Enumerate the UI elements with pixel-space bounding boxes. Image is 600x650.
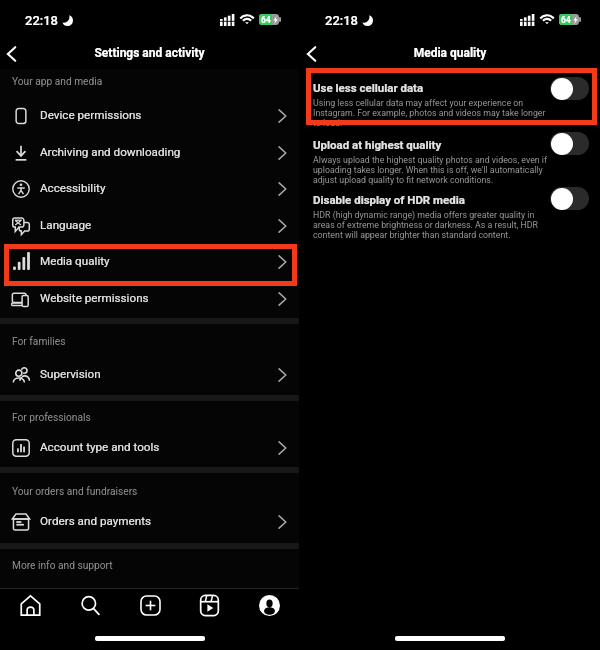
staticText: Upload at highest quality [313, 138, 442, 151]
staticText: adjust upload quality to fit network con… [313, 175, 494, 185]
staticText: Orders and payments [40, 514, 151, 528]
button[interactable]: Language [0, 208, 299, 244]
staticText: Media quality [40, 254, 110, 268]
staticText: Language [40, 218, 92, 232]
button[interactable]: Reels [193, 589, 225, 621]
staticText: Supervision [40, 367, 101, 381]
staticText: Accessibility [40, 181, 106, 195]
staticText: Use less cellular data [313, 81, 424, 94]
button[interactable]: Create [134, 589, 166, 621]
staticText: Device permissions [40, 108, 142, 122]
button[interactable]: Search [74, 589, 106, 621]
staticText: Your app and media [12, 76, 103, 88]
button[interactable]: Orders and payments [0, 504, 299, 540]
staticText: 64 [261, 15, 271, 25]
button[interactable]: Profile [253, 589, 285, 621]
button[interactable]: Use less cellular data [300, 81, 600, 139]
button[interactable]: Media quality [0, 244, 299, 280]
button[interactable]: Disable display of HDR media [550, 187, 589, 210]
button[interactable]: Account type and tools [0, 430, 299, 466]
staticText: areas of extreme brightness or darkness.… [313, 220, 538, 230]
staticText: Settings and activity [0, 46, 299, 60]
staticText: 22:18 [25, 13, 58, 28]
staticText: Always upload the highest quality photos… [313, 155, 548, 165]
button[interactable]: Accessibility [0, 171, 299, 207]
staticText: Instagram. For example, photos and video… [313, 108, 546, 118]
staticText: Your orders and fundraisers [12, 486, 138, 498]
button[interactable]: Archiving and downloading [0, 135, 299, 171]
staticText: Disable display of HDR media [313, 193, 465, 206]
button[interactable]: Upload at highest quality [550, 132, 589, 155]
staticText: Using less cellular data may affect your… [313, 98, 524, 108]
button[interactable]: Home [14, 589, 46, 621]
button[interactable]: Back [5, 45, 23, 63]
staticText: For families [12, 336, 66, 348]
button[interactable]: Back [305, 45, 323, 63]
staticText: 64 [561, 15, 571, 25]
button[interactable]: Use less cellular data [550, 77, 589, 100]
staticText: Media quality [300, 46, 600, 60]
staticText: Archiving and downloading [40, 145, 181, 159]
button[interactable]: Upload at highest quality [300, 138, 600, 196]
staticText: Website permissions [40, 291, 149, 305]
button[interactable]: Website permissions [0, 281, 299, 317]
staticText: 22:18 [325, 13, 358, 28]
button[interactable]: Device permissions [0, 98, 299, 134]
button[interactable]: Disable display of HDR media [300, 193, 600, 251]
staticText: More info and support [12, 560, 113, 572]
button[interactable]: Supervision [0, 357, 299, 393]
staticText: Account type and tools [40, 440, 160, 454]
staticText: HDR (high dynamic range) media offers gr… [313, 210, 535, 220]
staticText: to load. [313, 118, 343, 128]
staticText: For professionals [12, 412, 91, 424]
staticText: content will appear brighter than standa… [313, 230, 511, 240]
staticText: uploading takes longer. When this is off… [313, 165, 543, 175]
